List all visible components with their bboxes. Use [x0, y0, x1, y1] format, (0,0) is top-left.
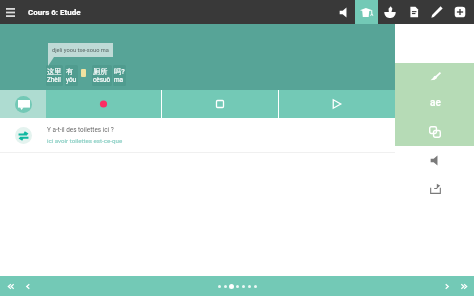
button[interactable]: Notes — [402, 0, 425, 24]
button[interactable]: Chat — [0, 90, 46, 118]
staticText: 吗? — [114, 67, 125, 76]
button[interactable]: 这里 — [46, 65, 63, 86]
staticText: ma — [114, 76, 124, 84]
button[interactable]: 厕所 — [92, 65, 112, 86]
staticText: cèsuǒ — [93, 76, 111, 84]
button[interactable]: 吗? — [113, 65, 126, 86]
button[interactable]: Last page — [455, 276, 472, 296]
button[interactable]: Y a-t-il des toilettes ici ? — [0, 118, 395, 152]
button[interactable]: Stop — [162, 90, 278, 118]
button[interactable]: Play — [279, 90, 395, 118]
button[interactable]: Edit — [425, 0, 448, 24]
staticText: 厕所 — [93, 67, 108, 76]
staticText: 这里 — [47, 67, 62, 76]
staticText: ae — [430, 97, 441, 109]
button[interactable]: First page — [2, 276, 19, 296]
button[interactable]: Share — [425, 178, 445, 198]
button[interactable]: Menu — [1, 0, 20, 24]
button[interactable]: 有 — [65, 65, 78, 86]
button[interactable]: Highlight — [425, 67, 445, 87]
button[interactable]: Add — [448, 0, 471, 24]
button[interactable]: Record — [46, 90, 161, 118]
staticText: yǒu — [66, 76, 77, 84]
staticText: Y a-t-il des toilettes ici ? — [47, 126, 114, 134]
button[interactable]: Copy — [425, 122, 445, 142]
staticText: djeli yoou tse-souo ma — [52, 47, 109, 54]
button[interactable]: Study mode — [355, 0, 378, 24]
button[interactable]: ae — [425, 93, 445, 113]
button[interactable]: Next — [438, 276, 455, 296]
staticText: Zhèlǐ — [47, 76, 61, 84]
staticText: Cours 6: Etude — [28, 8, 81, 17]
button[interactable]: Mute — [333, 0, 355, 24]
staticText: ici avoir toilettes est-ce-que — [47, 137, 123, 144]
button[interactable]: Previous — [19, 276, 36, 296]
button[interactable]: djeli yoou tse-souo ma — [48, 43, 113, 66]
staticText: 有 — [66, 67, 74, 76]
button[interactable]: Audio — [425, 150, 445, 170]
button[interactable]: Save — [378, 0, 402, 24]
